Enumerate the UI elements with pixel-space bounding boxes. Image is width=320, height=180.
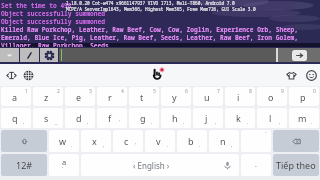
button[interactable]: k (225, 108, 255, 128)
staticText: f (108, 112, 112, 124)
staticText: ' (119, 119, 121, 126)
staticText: g (140, 112, 146, 124)
staticText: z (44, 91, 49, 103)
staticText: s (44, 112, 49, 124)
staticText: Set the time to 498 (1, 1, 72, 9)
button[interactable]: g (129, 108, 159, 128)
button[interactable]: c (113, 130, 143, 152)
staticText: ' (135, 142, 137, 149)
button[interactable]: h (161, 108, 191, 128)
button[interactable]: a (49, 154, 79, 176)
button[interactable]: b (177, 130, 207, 152)
staticText: 9 (281, 88, 284, 95)
staticText: 1.18.0.20 Cot-w474 x966114793? VIVO 1713… (66, 0, 235, 6)
staticText: . (167, 142, 169, 149)
staticText: 12# (16, 159, 33, 171)
button[interactable]: f (97, 108, 127, 128)
button[interactable]: a (1, 87, 31, 106)
staticText: 6 (185, 88, 188, 95)
button[interactable]: Shift (1, 130, 47, 152)
button[interactable]: s (33, 108, 63, 128)
button[interactable] (59, 48, 276, 62)
button[interactable]: Backspace (273, 130, 319, 152)
staticText: v (156, 135, 161, 147)
button[interactable]: Emoji (303, 67, 319, 83)
staticText: r (108, 91, 112, 103)
staticText: a (62, 157, 67, 167)
staticText: , (231, 142, 233, 149)
staticText: Tiếp theo (276, 159, 316, 171)
button[interactable]: v (145, 130, 175, 152)
staticText: ‹ English › (133, 160, 170, 171)
button[interactable]: l (257, 108, 287, 128)
staticText: 2 (57, 88, 60, 95)
staticText: m (298, 112, 307, 124)
staticText: t (140, 91, 144, 103)
staticText: j (205, 112, 208, 124)
staticText: . (255, 160, 257, 170)
button[interactable]: Change language (20, 67, 36, 83)
staticText: e (76, 91, 82, 103)
staticText: . (183, 119, 185, 126)
button[interactable]: Theme (283, 67, 299, 83)
staticText: 5 (153, 88, 156, 95)
staticText: i (237, 91, 240, 103)
staticText: u (204, 91, 210, 103)
button[interactable]: Settings (40, 48, 58, 62)
button[interactable]: Move cursor (3, 67, 19, 83)
staticText: 0 (313, 88, 316, 95)
staticText: _ (55, 119, 58, 126)
button[interactable]: Tiếp theo (273, 154, 319, 176)
button[interactable]: r (97, 87, 127, 106)
staticText: Killed Raw Porkchop, Leather, Raw Beef, … (1, 25, 298, 33)
button[interactable]: ‹ English › (81, 154, 239, 176)
button[interactable]: w (49, 130, 79, 152)
staticText: , (279, 119, 281, 126)
staticText: 8 (249, 88, 252, 95)
button[interactable]: u (193, 87, 223, 106)
staticText: Emerald, Blue Ice, Pig, Leather, Raw Bee… (1, 33, 298, 41)
staticText: Villager, Raw Porkchop, Seeds (1, 41, 109, 47)
staticText: n (220, 135, 226, 147)
button[interactable]: j (193, 108, 223, 128)
staticText: , (215, 119, 217, 126)
button[interactable]: q (1, 108, 31, 128)
button[interactable]: n (209, 130, 239, 152)
button[interactable]: . (241, 154, 271, 176)
button[interactable]: m (289, 108, 319, 128)
button[interactable]: 12# (1, 154, 47, 176)
staticText: . (247, 119, 249, 126)
staticText: d (76, 112, 82, 124)
staticText: Object successfully summoned (1, 17, 105, 25)
button[interactable]: i (225, 87, 255, 106)
button[interactable]: t (129, 87, 159, 106)
button[interactable]: Send (278, 48, 320, 62)
staticText: p (300, 91, 306, 103)
button[interactable]: e (65, 87, 95, 106)
staticText: 1 (25, 88, 28, 95)
staticText: 7 (217, 88, 220, 95)
button[interactable]: z (33, 87, 63, 106)
button[interactable]: d (65, 108, 95, 128)
staticText: . (151, 119, 153, 126)
staticText: h (172, 112, 178, 124)
button[interactable]: Close chat (0, 48, 19, 62)
button[interactable]: x (81, 130, 111, 152)
staticText: MCPE/A ServerImp1643, Mem366, Highest Me… (66, 6, 256, 12)
staticText: a (12, 91, 18, 103)
button[interactable]: y (161, 87, 191, 106)
staticText: , (103, 142, 105, 149)
staticText: x (92, 135, 97, 147)
staticText: w (59, 135, 67, 147)
staticText: l (269, 112, 272, 124)
staticText: , (23, 119, 25, 126)
staticText: . (71, 142, 73, 149)
button[interactable]: o (257, 87, 287, 106)
staticText: b (188, 135, 194, 147)
button[interactable]: p (289, 87, 319, 106)
staticText: , (87, 119, 89, 126)
button[interactable]: Slash command (20, 48, 39, 62)
staticText: o (268, 91, 274, 103)
staticText: c (124, 135, 129, 147)
